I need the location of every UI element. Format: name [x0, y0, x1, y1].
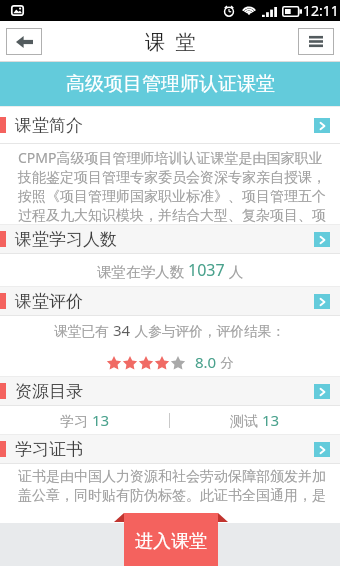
staticText: 人参与评价，评价结果：	[131, 321, 286, 340]
staticText: 进入课堂	[135, 530, 207, 553]
button[interactable]: 学习	[60, 410, 110, 430]
button[interactable]: 学习证书	[0, 434, 340, 464]
staticText: 高级项目管理师认证课堂	[66, 72, 275, 96]
staticText: 课堂简介	[15, 115, 83, 136]
staticText: 学习	[60, 411, 92, 430]
staticText: CPMP高级项目管理师培训认证课堂是由国家职业技能鉴定项目管理专家委员会资深专家…	[18, 148, 330, 224]
button[interactable]: 进入课堂	[114, 513, 228, 566]
staticText: 13	[262, 410, 280, 430]
staticText: 课堂学习人数	[15, 229, 117, 250]
staticText: 测试	[230, 411, 262, 430]
staticText: 34	[113, 320, 131, 340]
staticText: 课堂已有	[54, 321, 113, 340]
staticText: 人	[225, 261, 244, 281]
staticText: 12:11	[303, 1, 339, 20]
button[interactable]: 课堂学习人数	[0, 224, 340, 254]
button[interactable]: 课堂评价	[0, 286, 340, 316]
button[interactable]: 测试	[230, 410, 280, 430]
other: Screenshot	[11, 5, 24, 16]
button[interactable]: 课堂简介	[0, 106, 340, 144]
staticText: 课堂在学人数	[97, 261, 188, 281]
staticText: 课 堂	[145, 28, 196, 55]
staticText: 1037	[188, 259, 225, 281]
button[interactable]: Back	[6, 28, 42, 55]
staticText: 证书是由中国人力资源和社会劳动保障部颁发并加盖公章，同时贴有防伪标签。此证书全国…	[18, 468, 330, 504]
staticText: 学习证书	[15, 439, 83, 460]
staticText: 8.0	[195, 352, 217, 372]
staticText: 分	[217, 353, 234, 371]
staticText: 课堂评价	[15, 291, 83, 312]
staticText: 资源目录	[15, 381, 83, 402]
button[interactable]: Menu	[298, 28, 334, 55]
button[interactable]: 资源目录	[0, 376, 340, 406]
staticText: 13	[92, 410, 110, 430]
